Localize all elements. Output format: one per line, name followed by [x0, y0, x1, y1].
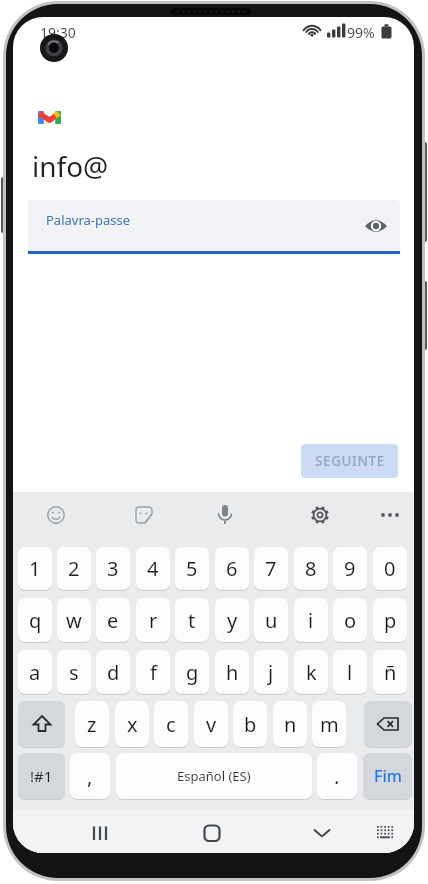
- staticText: SEGUINTE: [315, 452, 385, 470]
- staticText: 3: [107, 555, 119, 582]
- staticText: 8: [305, 555, 317, 582]
- button[interactable]: 4: [136, 547, 170, 590]
- button[interactable]: x: [115, 701, 149, 747]
- button[interactable]: h: [215, 650, 249, 694]
- button[interactable]: [80, 815, 120, 851]
- button[interactable]: s: [57, 650, 91, 694]
- staticText: !#1: [30, 766, 53, 786]
- button[interactable]: q: [18, 598, 52, 642]
- button[interactable]: r: [136, 598, 170, 642]
- staticText: u: [265, 607, 278, 634]
- button[interactable]: u: [254, 598, 288, 642]
- staticText: p: [384, 607, 397, 634]
- button[interactable]: .: [317, 753, 357, 799]
- staticText: 5: [186, 555, 198, 582]
- staticText: 99%: [347, 23, 375, 42]
- button[interactable]: [364, 701, 412, 747]
- staticText: s: [69, 659, 79, 686]
- button[interactable]: 7: [254, 547, 288, 590]
- staticText: i: [308, 607, 314, 634]
- staticText: d: [107, 659, 120, 686]
- button[interactable]: 9: [333, 547, 367, 590]
- staticText: 7: [265, 555, 277, 582]
- staticText: 6: [226, 555, 238, 582]
- staticText: h: [226, 659, 239, 686]
- staticText: Palavra-passe: [46, 211, 131, 229]
- staticText: .: [334, 763, 340, 790]
- staticText: f: [150, 659, 157, 686]
- button[interactable]: [192, 815, 232, 851]
- button[interactable]: [207, 497, 243, 533]
- button[interactable]: f: [136, 650, 170, 694]
- staticText: e: [107, 607, 119, 634]
- staticText: o: [344, 607, 357, 634]
- button[interactable]: v: [194, 701, 228, 747]
- button[interactable]: b: [233, 701, 267, 747]
- button[interactable]: ,: [70, 753, 110, 799]
- staticText: 1: [29, 555, 41, 582]
- staticText: ,: [87, 763, 93, 790]
- button[interactable]: 0: [373, 547, 407, 590]
- staticText: q: [29, 607, 42, 634]
- button[interactable]: Español (ES): [116, 753, 312, 799]
- button[interactable]: [126, 497, 162, 533]
- staticText: b: [244, 711, 257, 738]
- button[interactable]: [38, 497, 74, 533]
- button[interactable]: 1: [18, 547, 52, 590]
- staticText: z: [87, 711, 97, 738]
- button[interactable]: k: [294, 650, 328, 694]
- staticText: 4: [147, 555, 159, 582]
- staticText: ñ: [384, 659, 397, 686]
- button[interactable]: [18, 701, 65, 747]
- button[interactable]: 6: [215, 547, 249, 590]
- staticText: Fim: [374, 765, 402, 787]
- button[interactable]: l: [333, 650, 367, 694]
- staticText: k: [306, 659, 317, 686]
- staticText: 19:30: [40, 23, 76, 42]
- button[interactable]: 5: [175, 547, 209, 590]
- button[interactable]: SEGUINTE: [301, 444, 398, 478]
- button[interactable]: z: [75, 701, 109, 747]
- button[interactable]: 8: [294, 547, 328, 590]
- button[interactable]: w: [57, 598, 91, 642]
- staticText: 2: [68, 555, 80, 582]
- button[interactable]: y: [215, 598, 249, 642]
- button[interactable]: 2: [57, 547, 91, 590]
- staticText: y: [227, 607, 238, 634]
- button[interactable]: e: [96, 598, 130, 642]
- button[interactable]: [365, 815, 405, 851]
- button[interactable]: [372, 497, 408, 533]
- button[interactable]: t: [175, 598, 209, 642]
- button[interactable]: [302, 815, 342, 851]
- button[interactable]: i: [294, 598, 328, 642]
- staticText: r: [149, 607, 158, 634]
- button[interactable]: g: [175, 650, 209, 694]
- staticText: t: [188, 607, 196, 634]
- staticText: 0: [384, 555, 396, 582]
- staticText: x: [127, 711, 138, 738]
- staticText: info@: [32, 147, 109, 185]
- button[interactable]: p: [373, 598, 407, 642]
- button[interactable]: 3: [96, 547, 130, 590]
- button[interactable]: o: [333, 598, 367, 642]
- staticText: m: [320, 711, 339, 738]
- button[interactable]: [363, 213, 389, 239]
- button[interactable]: a: [18, 650, 52, 694]
- button[interactable]: d: [96, 650, 130, 694]
- button[interactable]: n: [273, 701, 307, 747]
- staticText: c: [166, 711, 176, 738]
- button[interactable]: [302, 497, 338, 533]
- staticText: w: [66, 607, 82, 634]
- staticText: v: [206, 711, 217, 738]
- button[interactable]: !#1: [18, 753, 65, 799]
- staticText: 9: [344, 555, 356, 582]
- staticText: Español (ES): [177, 767, 251, 785]
- button[interactable]: m: [312, 701, 346, 747]
- staticText: a: [29, 659, 41, 686]
- staticText: j: [268, 659, 274, 686]
- button[interactable]: ñ: [373, 650, 407, 694]
- button[interactable]: c: [154, 701, 188, 747]
- button[interactable]: j: [254, 650, 288, 694]
- button[interactable]: [28, 200, 400, 253]
- button[interactable]: Fim: [363, 753, 412, 799]
